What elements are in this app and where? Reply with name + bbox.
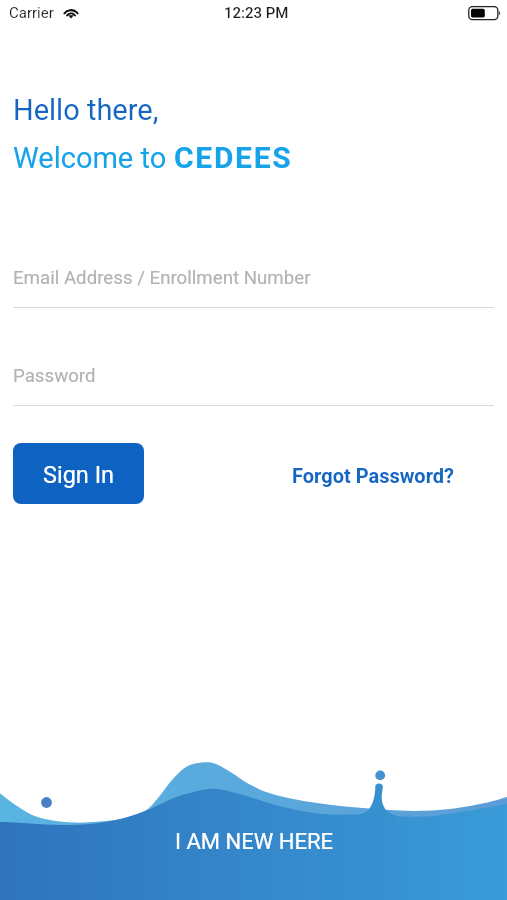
staticText: CEDEES — [174, 140, 293, 175]
staticText: Forgot Password? — [292, 464, 455, 487]
staticText: Carrier — [9, 4, 54, 22]
button[interactable]: Forgot Password? — [292, 464, 455, 487]
staticText: 12:23 PM — [224, 4, 289, 22]
staticText: Password — [13, 365, 96, 387]
button[interactable]: I AM NEW HERE — [0, 828, 507, 900]
staticText: I AM NEW HERE — [175, 829, 333, 855]
staticText: Welcome to — [13, 141, 174, 175]
staticText: Email Address / Enrollment Number — [13, 267, 311, 289]
staticText: Hello there, — [13, 93, 159, 127]
button[interactable]: Sign In — [13, 443, 144, 504]
staticText: Sign In — [43, 461, 115, 489]
